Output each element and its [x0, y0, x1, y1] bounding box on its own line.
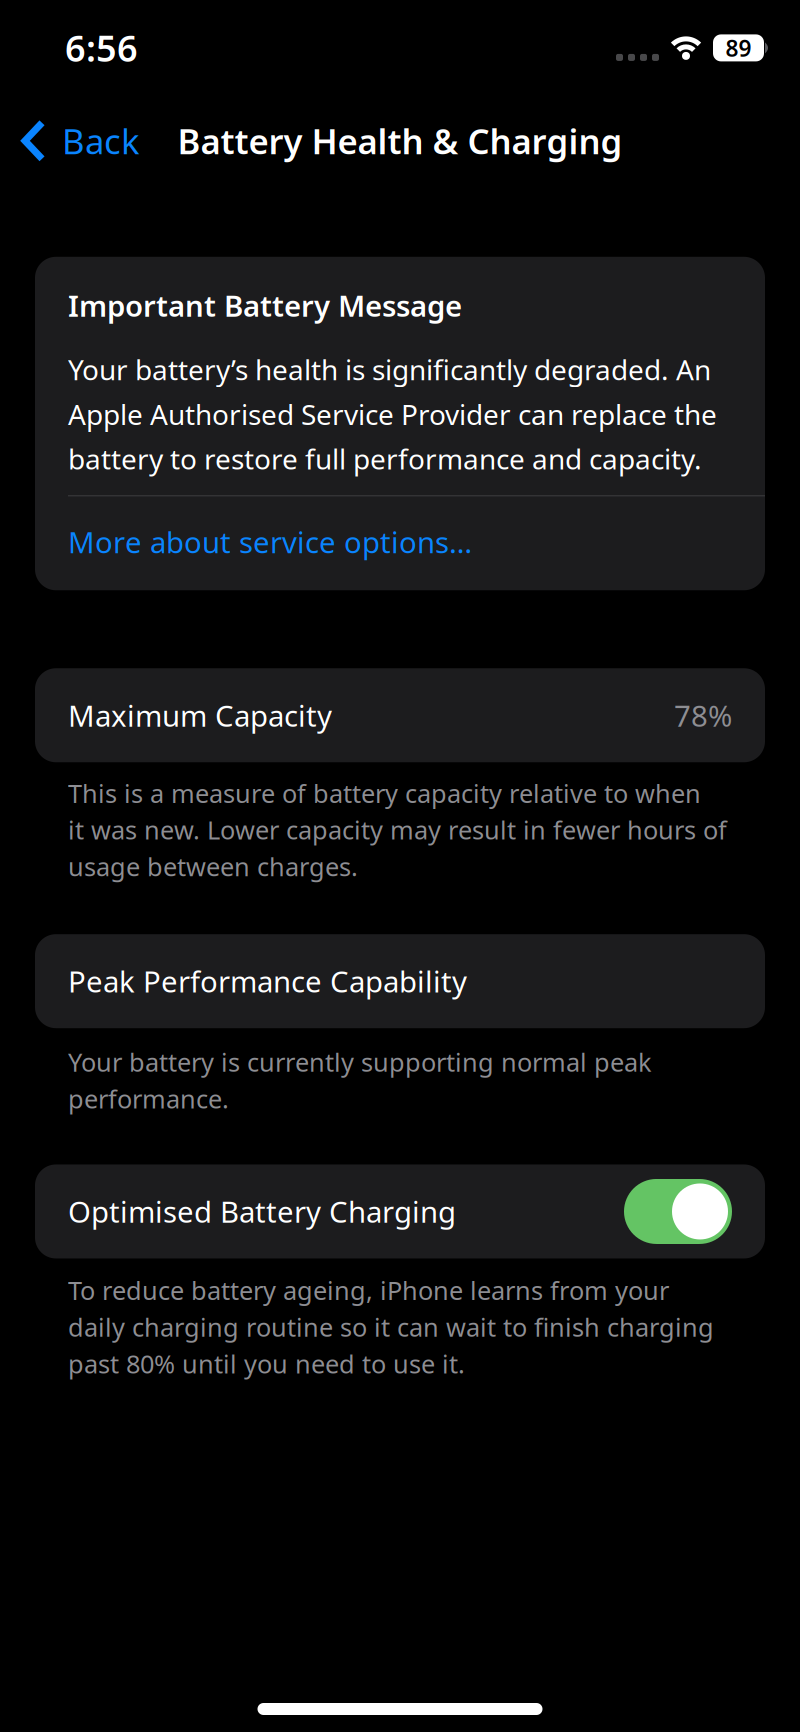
staticText: 78% [674, 696, 732, 735]
staticText: This is a measure of battery capacity re… [68, 776, 727, 883]
staticText: 6:56 [65, 24, 138, 72]
staticText: Your battery is currently supporting nor… [68, 1045, 652, 1115]
staticText: Optimised Battery Charging [68, 1192, 456, 1231]
staticText: Peak Performance Capability [68, 962, 467, 1001]
staticText: More about service options… [68, 522, 472, 561]
staticText: To reduce battery ageing, iPhone learns … [68, 1273, 714, 1380]
staticText: Back [62, 118, 140, 164]
staticText: Maximum Capacity [68, 696, 332, 735]
button[interactable]: Optimised Battery Charging [624, 1179, 732, 1244]
staticText: Battery Health & Charging [177, 118, 622, 164]
staticText: 89 [725, 33, 751, 63]
button[interactable]: Back [0, 118, 140, 164]
staticText: Important Battery Message [68, 286, 462, 325]
button[interactable]: More about service options… [68, 496, 472, 590]
staticText: Your battery’s health is significantly d… [68, 351, 717, 477]
